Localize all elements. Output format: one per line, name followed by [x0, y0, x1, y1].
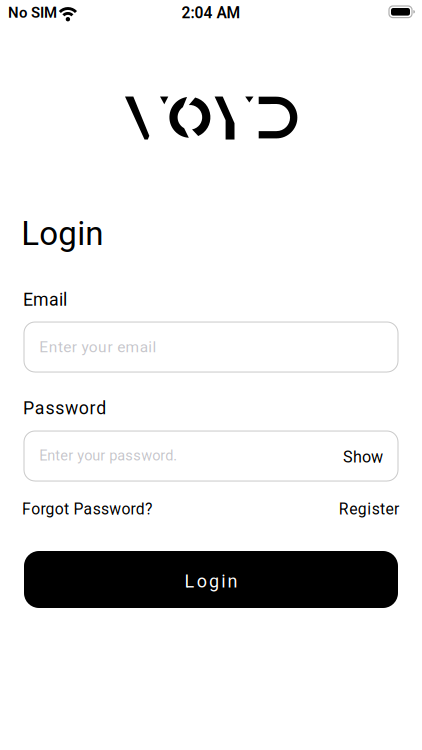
staticText: g [209, 571, 219, 592]
staticText: Password [23, 398, 106, 419]
staticText: Register [339, 500, 399, 518]
button[interactable]: L [24, 551, 398, 608]
button[interactable]: Register [339, 500, 399, 518]
staticText: Login [21, 214, 103, 253]
staticText: o [197, 571, 207, 592]
staticText: 2:04 AM [181, 4, 240, 22]
button[interactable]: Email [24, 322, 398, 372]
button[interactable]: Password [24, 431, 398, 481]
staticText: Enter your email [39, 338, 156, 356]
staticText: i [221, 571, 225, 592]
staticText: Show [343, 448, 383, 466]
staticText: Forgot Password? [22, 500, 152, 518]
staticText: Enter your password. [39, 447, 177, 464]
staticText: No SIM [8, 4, 57, 21]
staticText: L [185, 571, 195, 592]
button[interactable]: Forgot Password? [22, 500, 152, 518]
staticText: Email [23, 289, 67, 310]
button[interactable]: Show [343, 448, 383, 466]
staticText: n [227, 571, 237, 592]
